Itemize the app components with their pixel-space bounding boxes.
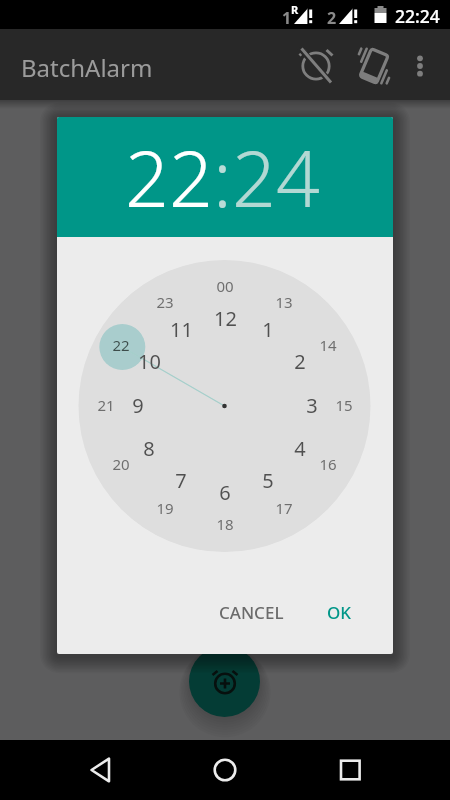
staticText: 19 <box>156 498 174 518</box>
button[interactable]: OK <box>316 590 362 634</box>
button[interactable]: Add alarm <box>189 646 260 717</box>
staticText: 22 <box>125 125 213 230</box>
staticText: 11 <box>170 316 193 343</box>
staticText: : <box>213 125 232 230</box>
staticText: CANCEL <box>219 601 284 624</box>
staticText: 10 <box>138 348 161 375</box>
staticText: OK <box>327 601 352 624</box>
button[interactable]: Alarm off <box>292 42 340 90</box>
button[interactable]: Home <box>165 740 285 800</box>
staticText: 2 <box>294 348 306 375</box>
staticText: 6 <box>219 479 231 506</box>
staticText: R <box>291 2 299 17</box>
staticText: 7 <box>175 467 187 494</box>
staticText: 22 <box>112 335 130 355</box>
button[interactable]: More options <box>398 44 442 88</box>
staticText: 4 <box>294 435 306 462</box>
staticText: 14 <box>319 335 337 355</box>
staticText: 00 <box>216 276 234 296</box>
staticText: 21 <box>97 395 115 415</box>
button[interactable]: Back <box>60 740 180 800</box>
staticText: 2 <box>327 7 337 29</box>
button[interactable]: CANCEL <box>207 590 296 634</box>
staticText: 9 <box>132 392 144 419</box>
staticText: 23 <box>156 292 174 312</box>
button[interactable]: Vibrate <box>350 42 398 90</box>
staticText: 18 <box>216 514 234 534</box>
button[interactable]: Recent apps <box>290 740 410 800</box>
staticText: BatchAlarm <box>21 51 153 84</box>
staticText: 1 <box>262 316 274 343</box>
staticText: 8 <box>143 435 155 462</box>
staticText: 5 <box>262 467 274 494</box>
staticText: 15 <box>335 395 353 415</box>
staticText: 22:24 <box>395 4 440 28</box>
staticText: 20 <box>112 454 130 474</box>
staticText: 13 <box>275 292 293 312</box>
staticText: 12 <box>214 305 237 332</box>
staticText: 3 <box>306 392 318 419</box>
staticText: 24 <box>232 125 320 230</box>
staticText: 17 <box>275 498 293 518</box>
staticText: 16 <box>319 454 337 474</box>
staticText: 1 <box>282 7 292 29</box>
